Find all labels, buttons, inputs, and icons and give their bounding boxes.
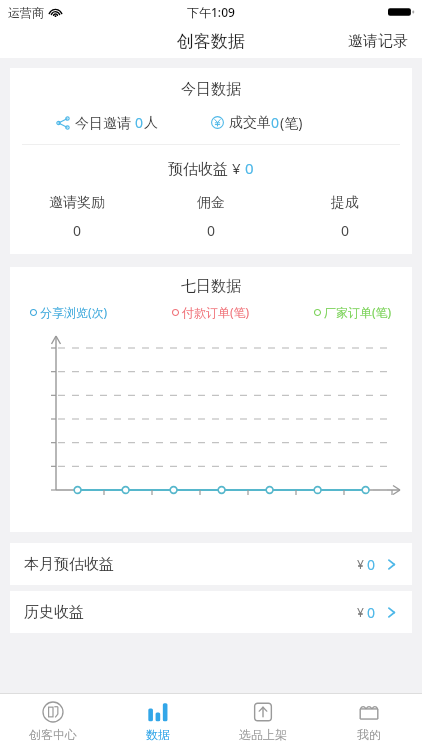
other: 我的 <box>358 701 380 723</box>
staticText: 0 <box>207 221 216 240</box>
staticText: 0 <box>367 603 376 622</box>
staticText: ¥ <box>357 556 367 572</box>
button[interactable]: Share <box>10 113 211 132</box>
staticText: 0 <box>135 113 144 132</box>
staticText: 分享浏览(次) <box>40 304 108 320</box>
button[interactable]: 本月预估收益 <box>10 543 412 585</box>
other: Orders <box>211 116 224 129</box>
staticText: 今日数据 <box>181 80 241 99</box>
staticText: 0 <box>367 555 376 574</box>
staticText: 厂家订单(笔) <box>324 304 392 320</box>
staticText: 付款订单(笔) <box>182 304 250 320</box>
button[interactable]: 历史收益 <box>10 591 412 633</box>
other: 创客中心 <box>42 701 64 723</box>
button[interactable]: 选品上架 <box>210 694 316 750</box>
staticText: 运营商 <box>8 5 44 20</box>
other: 选品上架 <box>252 701 274 723</box>
staticText: 创客数据 <box>177 31 245 52</box>
staticText: 数据 <box>146 727 170 742</box>
staticText: 选品上架 <box>239 727 287 742</box>
staticText: 本月预估收益 <box>24 555 114 574</box>
staticText: 预估收益 ¥ <box>168 158 245 178</box>
staticText: (笔) <box>280 113 303 132</box>
staticText: 历史收益 <box>24 603 84 622</box>
staticText: 今日邀请 <box>75 113 135 132</box>
button[interactable]: 邀请记录 <box>334 26 422 57</box>
button[interactable]: Orders <box>211 113 412 132</box>
staticText: 邀请奖励 <box>49 194 105 212</box>
staticText: ¥ <box>357 604 367 620</box>
staticText: 邀请记录 <box>348 32 408 51</box>
staticText: 佣金 <box>197 194 225 212</box>
button[interactable]: 创客中心 <box>0 694 105 750</box>
staticText: 0 <box>245 158 254 178</box>
other: 数据 <box>147 701 169 723</box>
staticText: 成交单 <box>229 114 271 132</box>
staticText: 提成 <box>331 194 359 212</box>
staticText: 七日数据 <box>181 277 241 296</box>
staticText: 我的 <box>357 727 381 742</box>
staticText: 0 <box>271 113 280 132</box>
staticText: 下午1:09 <box>187 4 235 20</box>
staticText: 0 <box>341 221 350 240</box>
other: Share <box>56 116 70 130</box>
button[interactable]: 数据 <box>105 694 210 750</box>
staticText: 0 <box>73 221 82 240</box>
button[interactable]: 我的 <box>316 694 422 750</box>
staticText: 人 <box>144 114 158 132</box>
staticText: 创客中心 <box>29 727 77 742</box>
